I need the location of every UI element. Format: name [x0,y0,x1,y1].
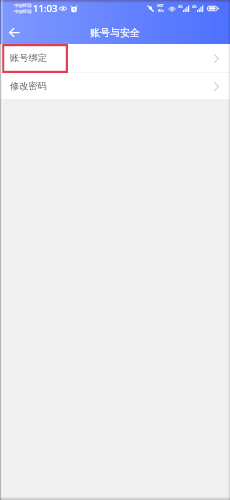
staticText: 4G [178,4,183,9]
staticText: 11:03 [33,2,58,15]
staticText: 4G [192,4,197,9]
staticText: 账号与安全 [90,26,140,39]
staticText: 中国移动 [14,9,32,15]
staticText: 账号绑定 [10,52,47,64]
button[interactable]: 修改密码 [0,73,230,99]
button[interactable]: 账号绑定 [0,44,230,72]
staticText: B/s [158,8,164,13]
staticText: 中国移动 [14,3,32,9]
button[interactable]: Back [2,20,26,44]
staticText: 修改密码 [10,80,47,92]
staticText: 307 [157,3,164,8]
